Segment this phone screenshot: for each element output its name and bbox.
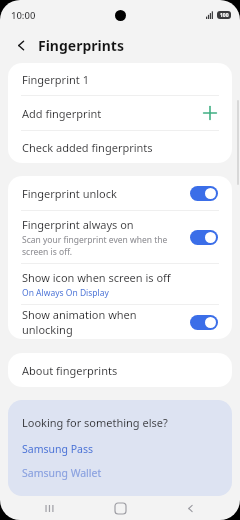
staticText: On Always On Display: [22, 287, 109, 299]
staticText: Fingerprint 1: [22, 72, 89, 87]
button[interactable]: Add fingerprint: [202, 105, 218, 121]
button[interactable]: Back: [13, 37, 30, 54]
staticText: 100: [220, 12, 229, 19]
staticText: Fingerprints: [38, 36, 124, 55]
button[interactable]: Fingerprint always on: [8, 211, 232, 263]
staticText: Add fingerprint: [22, 106, 202, 121]
staticText: Samsung Wallet: [22, 466, 102, 480]
staticText: Samsung Pass: [22, 442, 93, 456]
button[interactable]: Toggle on: [190, 230, 218, 245]
button[interactable]: Fingerprint 1: [8, 63, 232, 95]
button[interactable]: Show icon when screen is off: [8, 264, 232, 304]
button[interactable]: About fingerprints: [8, 353, 232, 387]
button[interactable]: Back: [170, 496, 210, 520]
button[interactable]: Fingerprint unlock: [8, 176, 232, 210]
button[interactable]: Toggle on: [190, 186, 218, 201]
button[interactable]: Recents: [30, 496, 70, 520]
staticText: Scan your fingerprint even when the scre…: [22, 234, 182, 258]
staticText: Show icon when screen is off: [22, 270, 171, 285]
staticText: Show animation when unlocking: [22, 307, 182, 337]
button[interactable]: Home: [100, 496, 140, 520]
button[interactable]: Show animation when unlocking: [8, 305, 232, 339]
button[interactable]: Samsung Wallet: [22, 466, 102, 480]
staticText: 10:00: [11, 9, 36, 22]
staticText: About fingerprints: [22, 363, 118, 378]
staticText: Looking for something else?: [22, 415, 168, 430]
staticText: Fingerprint always on: [22, 217, 134, 232]
button[interactable]: Add fingerprint: [8, 96, 232, 130]
button[interactable]: Toggle on: [190, 315, 218, 330]
staticText: Check added fingerprints: [22, 140, 153, 155]
staticText: Fingerprint unlock: [22, 186, 117, 201]
button[interactable]: Samsung Pass: [22, 442, 93, 456]
button[interactable]: Check added fingerprints: [8, 131, 232, 163]
